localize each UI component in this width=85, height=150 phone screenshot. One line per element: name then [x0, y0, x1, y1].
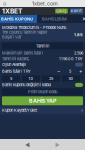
staticText: 1XBET: [2, 7, 22, 15]
button[interactable]: BAHİS YAP: [2, 96, 83, 105]
button[interactable]: BAHİS KUPONU: [0, 15, 37, 23]
staticText: 1.85: [74, 32, 83, 37]
staticText: +: [79, 68, 83, 74]
staticText: 10: [28, 76, 33, 81]
staticText: 1156.00 TRY: [59, 56, 83, 61]
staticText: GİRİŞ: [56, 9, 67, 13]
button[interactable]: 25: [42, 75, 60, 81]
staticText: BAHİSLERİM: [42, 17, 67, 21]
staticText: −: [57, 68, 61, 74]
staticText: ›: [81, 107, 83, 114]
staticText: 5: [10, 76, 12, 81]
staticText: KAYIT: [70, 9, 82, 13]
staticText: 5: [69, 69, 71, 74]
staticText: BAHİS KUPONU: [1, 17, 33, 21]
staticText: BAHİS YAP: [29, 98, 56, 104]
button[interactable]: Close: [80, 15, 85, 23]
button[interactable]: 10: [22, 75, 40, 81]
button[interactable]: 50: [62, 75, 80, 81]
staticText: 25: [49, 76, 53, 81]
staticText: Maksimum bahis tutarı: [2, 50, 43, 55]
staticText: ✕: [82, 16, 85, 22]
staticText: Bahis kuponu değişimi kabul: [2, 82, 51, 87]
staticText: 1xbet.com: [32, 0, 58, 7]
staticText: 50: [68, 76, 73, 81]
button[interactable]: 5: [2, 75, 20, 81]
staticText: Tek Oyuncu Tahmin Yapılır Başarı Var: [2, 30, 48, 39]
staticText: Oyun Avantajlı: [2, 62, 26, 67]
staticText: Kupon Kaydet/Yükle: [2, 108, 37, 113]
staticText: Tahmin: [36, 44, 49, 48]
button[interactable]: BAHİSLERİM: [37, 15, 72, 23]
staticText: ▶: [55, 141, 60, 148]
staticText: 2.596: [74, 50, 83, 55]
button[interactable]: GİRİŞ: [55, 8, 68, 13]
staticText: Bahis tutarı TRY: [2, 69, 31, 74]
button[interactable]: KAYIT: [70, 8, 83, 13]
staticText: Tahmini kazanç: [2, 56, 29, 61]
staticText: Promosyon kodu: [28, 89, 57, 94]
staticText: ◀: [25, 141, 30, 148]
staticText: Moldova Tredeciumis - Phoebe Nunu: [2, 25, 66, 30]
button[interactable]: Kupon Kaydet/Yükle: [0, 106, 85, 114]
staticText: ⌂: [3, 0, 6, 7]
